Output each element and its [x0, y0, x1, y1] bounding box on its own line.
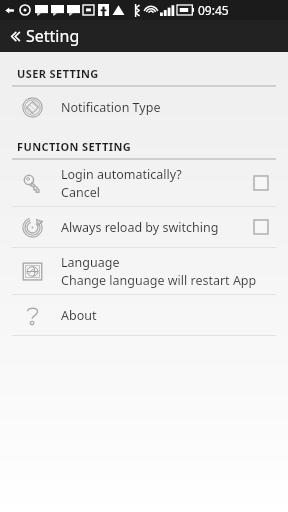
button[interactable]: Language: [0, 248, 288, 294]
button[interactable]: Login automatically?: [0, 160, 288, 206]
button[interactable]: Always reload: [248, 214, 274, 240]
staticText: Cancel: [61, 184, 100, 201]
staticText: Always reload by switching menu: [61, 219, 242, 236]
button[interactable]: About: [0, 295, 288, 335]
staticText: Login automatically?: [61, 166, 182, 183]
button[interactable]: Back: [5, 22, 23, 50]
staticText: Notification Type: [61, 99, 161, 116]
staticText: Change language will restart App: [61, 272, 257, 289]
staticText: Setting: [26, 25, 80, 47]
staticText: Language: [61, 254, 120, 271]
staticText: About: [61, 307, 97, 324]
staticText: FUNCTION SETTING: [17, 139, 132, 154]
button[interactable]: Always reload by switching menu: [0, 207, 288, 247]
button[interactable]: Login automatically: [248, 170, 274, 196]
staticText: 09:45: [198, 2, 229, 18]
button[interactable]: Notification Type: [0, 87, 288, 127]
staticText: USER SETTING: [17, 66, 99, 81]
